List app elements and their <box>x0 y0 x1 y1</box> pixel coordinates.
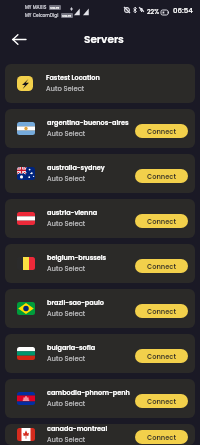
staticText: VoLTE <box>50 6 60 10</box>
staticText: Connect <box>147 217 176 226</box>
staticText: austria-vienna <box>47 208 98 217</box>
staticText: MY MAXIS <box>25 4 47 10</box>
staticText: Connect <box>147 397 176 406</box>
staticText: Auto Select <box>47 354 86 364</box>
staticText: Auto Select <box>46 84 85 94</box>
staticText: Fastest Location <box>46 73 100 82</box>
staticText: 06:54 <box>173 6 193 16</box>
button[interactable]: Connect <box>135 124 188 138</box>
staticText: canada-montreal <box>47 424 108 433</box>
staticText: Connect <box>147 262 176 271</box>
button[interactable]: Connect <box>135 169 188 183</box>
button[interactable]: Connect <box>135 349 188 363</box>
staticText: Connect <box>147 127 176 136</box>
staticText: Auto Select <box>47 129 86 139</box>
button[interactable]: cambodia-phnom-penh <box>5 379 195 418</box>
staticText: bulgaria-sofia <box>47 343 96 352</box>
button[interactable]: Back <box>5 25 33 53</box>
staticText: Connect <box>147 172 176 181</box>
staticText: Connect <box>147 307 176 316</box>
staticText: Auto Select <box>47 309 86 319</box>
button[interactable]: Fastest Location <box>5 64 195 103</box>
staticText: australia-sydney <box>47 163 105 172</box>
staticText: cambodia-phnom-penh <box>47 388 130 397</box>
staticText: Connect <box>147 352 176 361</box>
staticText: Servers <box>84 32 124 47</box>
button[interactable]: belgium-brussels <box>5 244 195 283</box>
staticText: MY CelcomDigi <box>25 12 59 18</box>
staticText: VoLTE <box>62 14 72 18</box>
button[interactable]: argentina-buenos-aires <box>5 109 195 148</box>
button[interactable]: Connect <box>135 259 188 273</box>
button[interactable]: Connect <box>135 214 188 228</box>
button[interactable]: Connect <box>135 394 188 408</box>
button[interactable]: Connect <box>135 430 188 444</box>
button[interactable]: bulgaria-sofia <box>5 334 195 373</box>
staticText: 22% <box>147 7 160 16</box>
staticText: Auto Select <box>47 219 86 229</box>
button[interactable]: brazil-sao-paulo <box>5 289 195 328</box>
staticText: argentina-buenos-aires <box>47 118 129 127</box>
staticText: Auto Select <box>47 399 86 409</box>
staticText: Connect <box>147 433 176 442</box>
staticText: brazil-sao-paulo <box>47 298 104 307</box>
staticText: Auto Select <box>47 435 86 445</box>
button[interactable]: austria-vienna <box>5 199 195 238</box>
button[interactable]: Connect <box>135 304 188 318</box>
staticText: Auto Select <box>47 264 86 274</box>
button[interactable]: australia-sydney <box>5 154 195 193</box>
staticText: belgium-brussels <box>47 253 107 262</box>
staticText: Auto Select <box>47 174 86 184</box>
button[interactable]: canada-montreal <box>5 424 195 445</box>
